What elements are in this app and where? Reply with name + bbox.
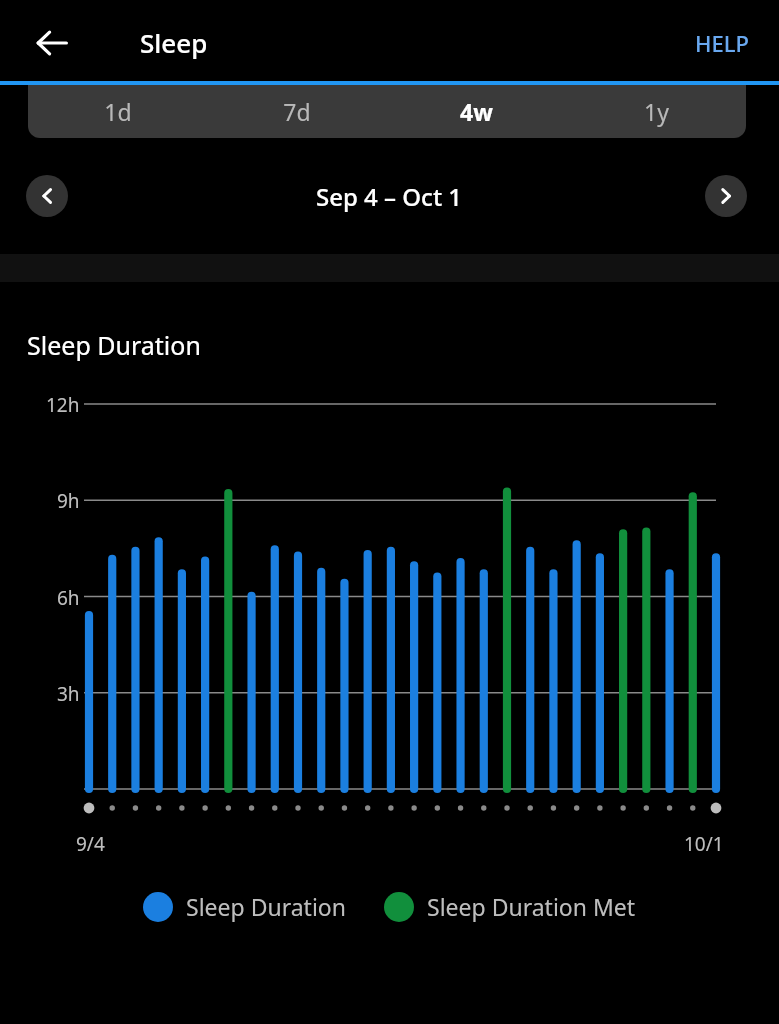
button[interactable]: Previous period bbox=[26, 175, 68, 217]
button[interactable]: Back bbox=[24, 15, 80, 71]
staticText: 4w bbox=[460, 96, 493, 127]
button[interactable]: HELP bbox=[683, 20, 761, 66]
button[interactable]: 1y bbox=[566, 85, 746, 138]
staticText: Sleep Duration Met bbox=[427, 891, 636, 922]
button[interactable]: Sleep Duration bbox=[143, 887, 346, 926]
button[interactable]: Sleep Duration Met bbox=[384, 887, 636, 926]
staticText: 9/4 bbox=[76, 831, 105, 857]
staticText: Sleep bbox=[140, 25, 208, 60]
staticText: 1d bbox=[104, 96, 132, 127]
button[interactable]: 1d bbox=[28, 85, 207, 138]
staticText: Sleep Duration bbox=[186, 891, 346, 922]
button[interactable]: 4w bbox=[386, 85, 566, 138]
button[interactable]: 7d bbox=[207, 85, 386, 138]
staticText: 3h bbox=[57, 681, 80, 707]
staticText: 1y bbox=[644, 96, 669, 127]
button[interactable]: Next period bbox=[705, 175, 747, 217]
staticText: 10/1 bbox=[684, 831, 724, 857]
staticText: 6h bbox=[57, 585, 80, 611]
staticText: 9h bbox=[57, 488, 80, 514]
staticText: Sleep Duration bbox=[27, 328, 201, 362]
staticText: 12h bbox=[46, 392, 80, 418]
staticText: Sep 4 – Oct 1 bbox=[316, 180, 463, 213]
staticText: 7d bbox=[283, 96, 311, 127]
staticText: HELP bbox=[695, 28, 749, 58]
